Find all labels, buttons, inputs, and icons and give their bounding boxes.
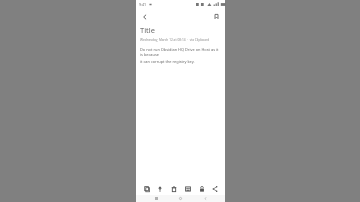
staticText: 9:41	[139, 2, 147, 7]
button[interactable]: Back	[139, 11, 150, 22]
staticText: it can corrupt the registry key.	[140, 59, 195, 64]
button[interactable]: Pin	[154, 183, 165, 194]
button[interactable]: Lock	[196, 183, 207, 194]
button[interactable]: Back	[201, 195, 210, 202]
button[interactable]: Recents	[152, 195, 161, 202]
button[interactable]: Copy	[141, 183, 152, 194]
button[interactable]: Home	[176, 195, 185, 202]
button[interactable]: Bookmark	[211, 11, 222, 22]
button[interactable]: Tag	[182, 183, 193, 194]
staticText: Wednesday, March 12 at 08:14 · via Clipb…	[140, 38, 210, 42]
button[interactable]: Share	[209, 183, 220, 194]
staticText: Do not run Obsidian HQ Drive on Host as …	[140, 47, 221, 57]
staticText: Title	[140, 25, 155, 35]
button[interactable]: Delete	[168, 183, 179, 194]
